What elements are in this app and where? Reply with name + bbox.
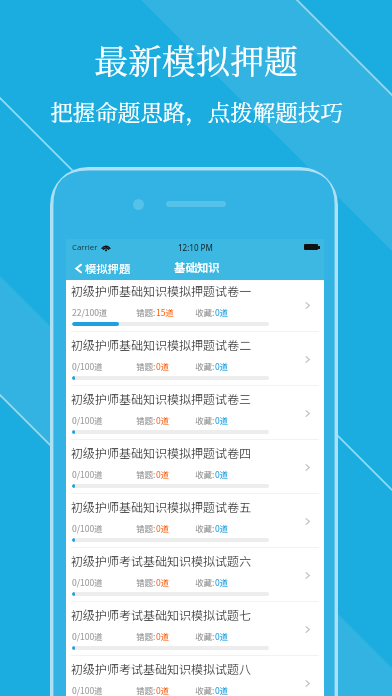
other: Open 初级护师基础知识模拟押题试卷二 <box>303 355 312 364</box>
staticText: 22/100道 <box>72 306 108 318</box>
staticText: 初级护师基础知识模拟押题试卷一 <box>71 282 252 299</box>
other: Open 初级护师基础知识模拟押题试卷四 <box>303 463 312 472</box>
button[interactable]: 初级护师基础知识模拟押题试卷二 <box>66 334 324 388</box>
staticText: 初级护师基础知识模拟押题试卷四 <box>71 444 252 461</box>
button[interactable]: 初级护师基础知识模拟押题试卷四 <box>66 442 324 496</box>
staticText: 0/100道 <box>72 684 103 696</box>
button[interactable]: Back <box>66 260 139 276</box>
staticText: 0/100道 <box>72 360 103 372</box>
staticText: 0道 <box>156 360 170 372</box>
staticText: 0/100道 <box>72 576 103 588</box>
staticText: 收藏: <box>195 684 215 696</box>
staticText: 错题: <box>136 684 156 696</box>
staticText: 0道 <box>156 576 170 588</box>
button[interactable]: 初级护师基础知识模拟押题试卷一 <box>66 280 324 334</box>
staticText: 0/100道 <box>72 468 103 480</box>
other: Open 初级护师基础知识模拟押题试卷一 <box>303 301 312 310</box>
button[interactable]: 初级护师考试基础知识模拟试题八 <box>66 658 324 696</box>
staticText: 0道 <box>215 414 229 426</box>
staticText: 0道 <box>215 522 229 534</box>
staticText: 基础知识 <box>174 259 220 276</box>
staticText: 15道 <box>156 306 174 318</box>
staticText: 12:10 PM <box>178 242 213 253</box>
staticText: 0道 <box>156 414 170 426</box>
other: Back <box>73 263 84 274</box>
staticText: 收藏: <box>195 522 215 534</box>
staticText: 0道 <box>215 630 229 642</box>
staticText: 初级护师考试基础知识模拟试题六 <box>71 552 252 569</box>
button[interactable]: 初级护师考试基础知识模拟试题六 <box>66 550 324 604</box>
staticText: 0道 <box>215 306 229 318</box>
staticText: 0道 <box>156 684 170 696</box>
staticText: 初级护师考试基础知识模拟试题七 <box>71 606 252 623</box>
staticText: 把握命题思路，点拨解题技巧 <box>50 95 343 127</box>
staticText: 收藏: <box>195 468 215 480</box>
staticText: 0道 <box>215 684 229 696</box>
other: Open 初级护师考试基础知识模拟试题七 <box>303 625 312 634</box>
staticText: 最新模拟押题 <box>94 35 298 84</box>
staticText: 收藏: <box>195 414 215 426</box>
staticText: 0道 <box>215 576 229 588</box>
staticText: 0/100道 <box>72 630 103 642</box>
staticText: 收藏: <box>195 630 215 642</box>
staticText: 0道 <box>215 360 229 372</box>
staticText: 初级护师基础知识模拟押题试卷五 <box>71 498 252 515</box>
other: Wi-Fi <box>101 244 111 251</box>
staticText: 初级护师基础知识模拟押题试卷三 <box>71 390 252 407</box>
staticText: 0道 <box>156 630 170 642</box>
staticText: 错题: <box>136 360 156 372</box>
staticText: 收藏: <box>195 576 215 588</box>
staticText: 0道 <box>156 522 170 534</box>
staticText: 错题: <box>136 414 156 426</box>
staticText: 错题: <box>136 630 156 642</box>
staticText: 0/100道 <box>72 414 103 426</box>
staticText: 初级护师考试基础知识模拟试题八 <box>71 660 252 677</box>
button[interactable]: 初级护师考试基础知识模拟试题七 <box>66 604 324 658</box>
button[interactable]: 初级护师基础知识模拟押题试卷三 <box>66 388 324 442</box>
staticText: 模拟押题 <box>85 260 131 276</box>
staticText: 0道 <box>215 468 229 480</box>
staticText: 错题: <box>136 306 156 318</box>
staticText: 错题: <box>136 522 156 534</box>
staticText: Carrier <box>72 242 98 253</box>
staticText: 0道 <box>156 468 170 480</box>
staticText: 错题: <box>136 576 156 588</box>
other: Open 初级护师考试基础知识模拟试题八 <box>303 679 312 688</box>
other: Open 初级护师考试基础知识模拟试题六 <box>303 571 312 580</box>
other: Open 初级护师基础知识模拟押题试卷三 <box>303 409 312 418</box>
staticText: 初级护师基础知识模拟押题试卷二 <box>71 336 252 353</box>
staticText: 0/100道 <box>72 522 103 534</box>
staticText: 收藏: <box>195 306 215 318</box>
staticText: 错题: <box>136 468 156 480</box>
other: Open 初级护师基础知识模拟押题试卷五 <box>303 517 312 526</box>
button[interactable]: 初级护师基础知识模拟押题试卷五 <box>66 496 324 550</box>
staticText: 收藏: <box>195 360 215 372</box>
